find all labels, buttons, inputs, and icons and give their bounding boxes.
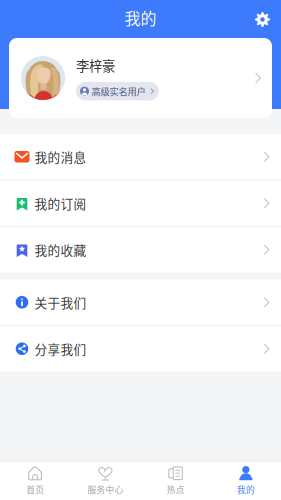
button[interactable]: 我的 [211, 462, 281, 500]
button[interactable]: 关于我们 [0, 279, 281, 325]
button[interactable]: Settings [247, 4, 278, 35]
staticText: 我的消息 [34, 148, 86, 166]
button[interactable]: 我的消息 [0, 134, 281, 179]
button[interactable]: 首页 [0, 462, 70, 500]
button[interactable]: 我的订阅 [0, 180, 281, 226]
button[interactable]: 李梓豪 [9, 38, 272, 118]
staticText: 服务中心 [87, 483, 123, 496]
staticText: 分享我们 [34, 340, 86, 358]
staticText: 高级实名用户 [91, 84, 145, 98]
staticText: 热点 [167, 483, 185, 496]
button[interactable]: 分享我们 [0, 326, 281, 371]
staticText: 我的 [237, 483, 255, 496]
staticText: 我的 [124, 6, 156, 29]
staticText: 李梓豪 [76, 56, 115, 75]
button[interactable]: 热点 [140, 462, 211, 500]
button[interactable]: 我的收藏 [0, 227, 281, 272]
staticText: 我的订阅 [34, 194, 86, 212]
staticText: 首页 [26, 483, 44, 496]
button[interactable]: 服务中心 [70, 462, 140, 500]
staticText: 关于我们 [34, 293, 86, 311]
staticText: 我的收藏 [34, 241, 86, 259]
